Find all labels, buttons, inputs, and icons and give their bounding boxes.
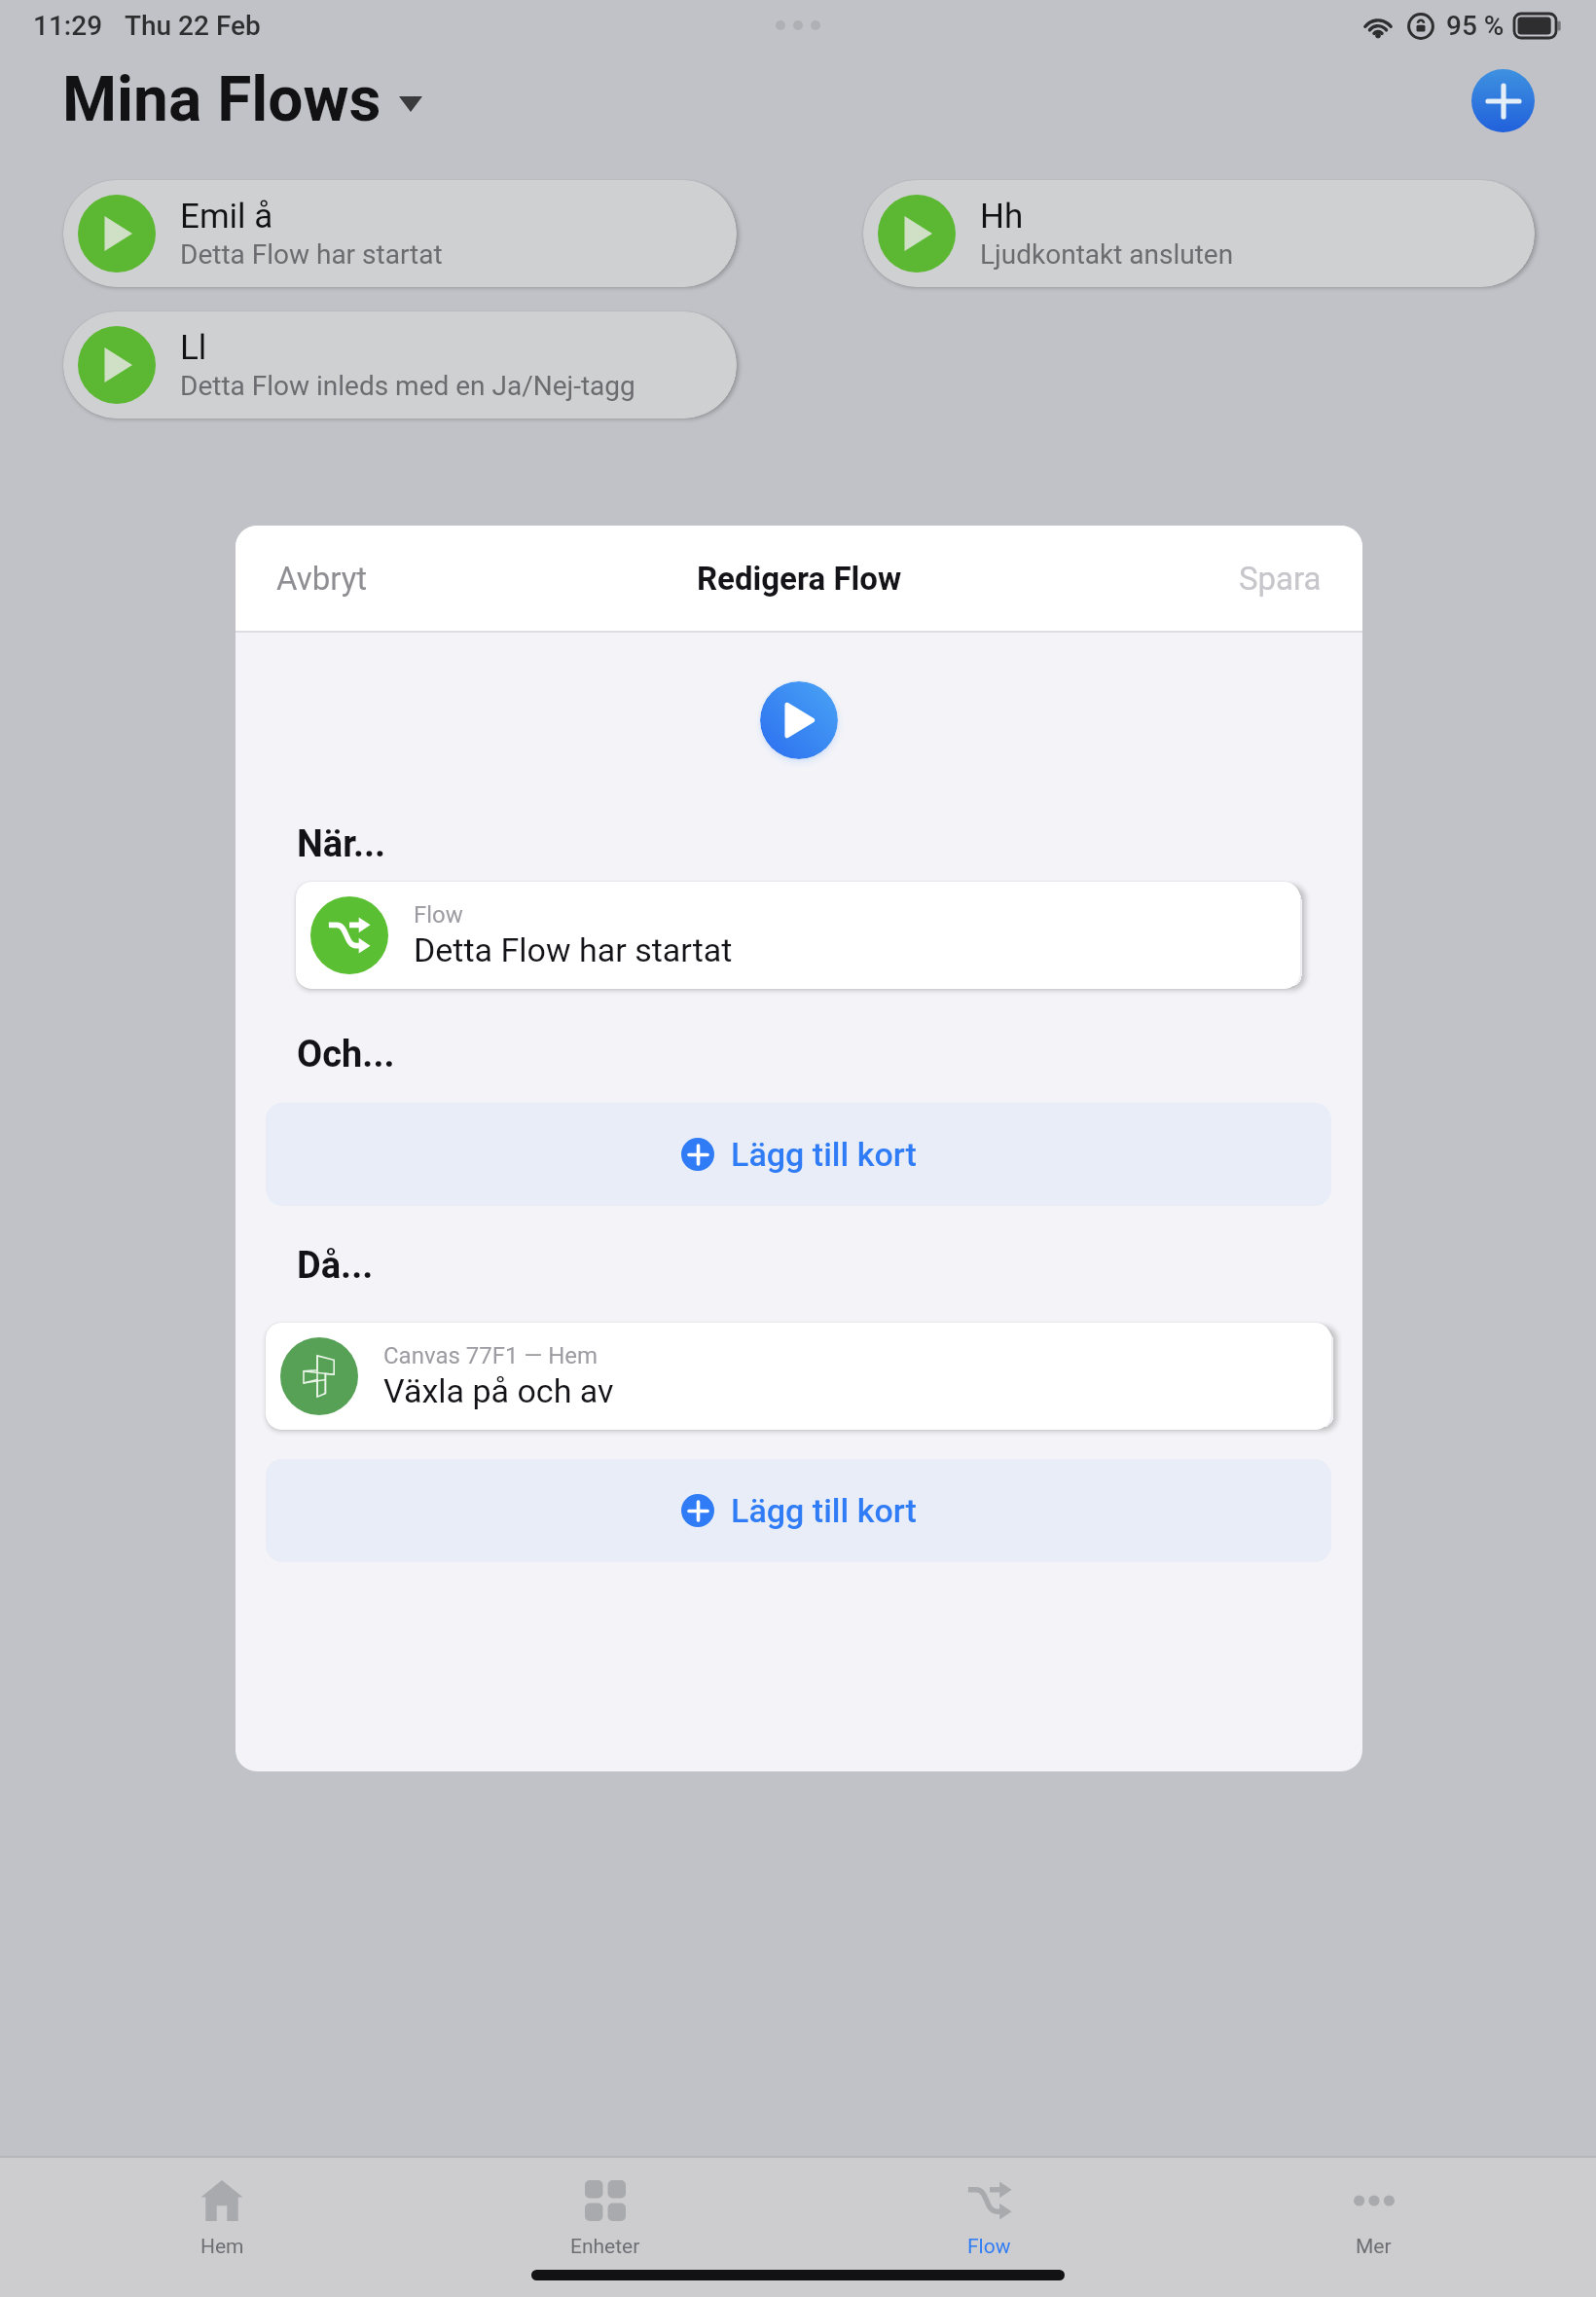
button[interactable]: Spara xyxy=(1212,542,1362,615)
button[interactable]: Hh xyxy=(863,180,1535,287)
staticText: Ljudkontakt ansluten xyxy=(980,238,1234,271)
button[interactable]: Flow xyxy=(296,882,1300,989)
staticText: Ll xyxy=(180,328,207,368)
staticText: Detta Flow inleds med en Ja/Nej-tagg xyxy=(180,370,635,402)
staticText: Emil å xyxy=(180,197,273,237)
staticText: Lägg till kort xyxy=(731,1491,917,1530)
staticText: Växla på och av xyxy=(383,1371,614,1410)
staticText: Mer xyxy=(1356,2235,1392,2259)
button[interactable]: Canvas 77F1 — Hem xyxy=(266,1323,1331,1430)
staticText: När... xyxy=(297,822,386,866)
staticText: Då... xyxy=(297,1244,374,1288)
button[interactable]: Avbryt xyxy=(236,542,395,615)
staticText: Enheter xyxy=(570,2235,640,2259)
button[interactable]: Mina Flows xyxy=(62,63,422,136)
button[interactable]: Hem xyxy=(30,2179,414,2259)
staticText: Detta Flow har startat xyxy=(414,930,733,969)
staticText: Och... xyxy=(297,1033,395,1076)
staticText: Hh xyxy=(980,197,1024,237)
staticText: Mina Flows xyxy=(62,63,381,136)
button[interactable]: Test Flow xyxy=(760,681,838,759)
button[interactable]: Mer xyxy=(1181,2179,1566,2259)
staticText: 11:29 xyxy=(33,10,103,42)
button[interactable]: Enheter xyxy=(414,2179,797,2259)
staticText: Hem xyxy=(200,2235,244,2259)
staticText: Avbryt xyxy=(276,560,368,598)
staticText: Spara xyxy=(1239,560,1322,598)
staticText: Redigera Flow xyxy=(697,560,902,598)
staticText: Thu 22 Feb xyxy=(125,10,261,42)
staticText: 95 % xyxy=(1446,10,1505,42)
staticText: Detta Flow har startat xyxy=(180,238,443,271)
button[interactable]: Add Flow xyxy=(1471,69,1535,132)
staticText: Canvas 77F1 — Hem xyxy=(383,1342,598,1369)
button[interactable]: Emil å xyxy=(63,180,737,287)
staticText: Lägg till kort xyxy=(731,1135,917,1174)
staticText: Flow xyxy=(414,901,463,929)
button[interactable]: Lägg till kort xyxy=(266,1103,1331,1206)
button[interactable]: Flow xyxy=(797,2179,1181,2259)
button[interactable]: Lägg till kort xyxy=(266,1459,1331,1562)
staticText: Flow xyxy=(967,2235,1011,2259)
button[interactable]: Ll xyxy=(63,311,737,419)
